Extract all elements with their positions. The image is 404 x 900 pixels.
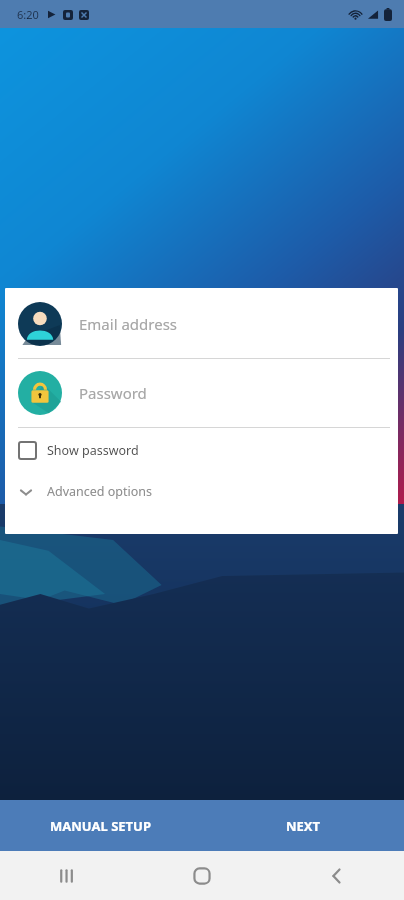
staticText: MANUAL SETUP (50, 817, 152, 835)
staticText: 6:20 (17, 7, 39, 22)
button[interactable]: Password (5, 359, 398, 427)
staticText: NEXT (286, 817, 321, 835)
button[interactable]: Recent apps (0, 851, 134, 900)
other: Password (18, 371, 62, 415)
button[interactable]: Back (269, 851, 404, 900)
button[interactable]: Home (134, 851, 269, 900)
staticText: Advanced options (47, 483, 153, 500)
button[interactable]: Expand advanced options (5, 469, 398, 508)
other: Account (18, 302, 62, 346)
button[interactable]: Account (5, 290, 398, 358)
button[interactable]: NEXT (202, 800, 404, 851)
staticText: Password (79, 383, 147, 403)
other: Expand advanced options (18, 484, 34, 500)
button[interactable]: MANUAL SETUP (0, 800, 202, 851)
staticText: Email address (79, 314, 178, 334)
button[interactable]: Show password (5, 428, 398, 469)
staticText: Show password (47, 442, 139, 459)
